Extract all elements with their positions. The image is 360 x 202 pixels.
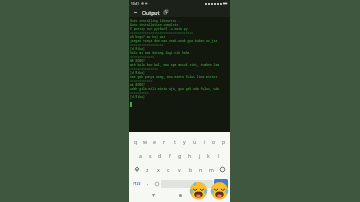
staticText: ============= (130, 55, 155, 59)
staticText: c (167, 166, 170, 173)
staticText: o (212, 138, 216, 145)
button[interactable]: y (180, 135, 189, 147)
staticText: r (163, 138, 166, 145)
button[interactable]: a (136, 149, 145, 161)
staticText: weh kulo bro bal, mau apa masuk sini, tu… (130, 63, 220, 67)
button[interactable]: Menu (132, 9, 138, 15)
staticText: udeh gila mili minta aja, gua gak ada fu… (130, 87, 220, 91)
staticText: jangan tanya dan mau anak-anak gua bukan… (130, 39, 218, 43)
button[interactable]: m (207, 163, 216, 175)
button[interactable]: p (219, 135, 228, 147)
staticText: l (218, 152, 220, 159)
button[interactable]: f (165, 149, 174, 161)
button[interactable]: , (143, 178, 152, 189)
staticText: j (199, 152, 201, 159)
button[interactable]: b (186, 163, 195, 175)
staticText: b (189, 166, 193, 173)
staticText: [d Riku] (130, 47, 145, 51)
button[interactable]: x (154, 163, 163, 175)
button[interactable]: q (131, 135, 140, 147)
staticText: u (193, 138, 197, 145)
staticText: f (169, 152, 171, 159)
button[interactable]: c (164, 163, 173, 175)
button[interactable]: n (196, 163, 205, 175)
button[interactable]: Shift (132, 163, 142, 175)
staticText: [d Riku] (130, 71, 145, 75)
staticText: w (143, 138, 148, 145)
staticText: s (149, 152, 152, 159)
staticText: WK BOBO? (130, 59, 145, 63)
button[interactable]: Emoji (152, 178, 161, 189)
staticText: ================== (130, 43, 164, 47)
button[interactable]: Home (176, 191, 184, 199)
button[interactable]: r (160, 135, 169, 147)
button[interactable]: j (195, 149, 204, 161)
button[interactable]: h (185, 149, 194, 161)
button[interactable]: w (141, 135, 150, 147)
staticText: Auto installing libraries... (130, 19, 182, 23)
staticText: a (139, 152, 142, 159)
staticText: h (188, 152, 192, 159)
staticText: ================================== (130, 31, 194, 35)
staticText: 10:41 (131, 2, 140, 6)
staticText: d (158, 152, 162, 159)
staticText: v (178, 166, 181, 173)
staticText: e (153, 138, 156, 145)
button[interactable]: o (209, 135, 218, 147)
button[interactable]: z (143, 163, 152, 175)
button[interactable]: i (200, 135, 209, 147)
staticText: ?123 (133, 181, 141, 186)
button[interactable]: e (150, 135, 159, 147)
button[interactable]: Back (149, 191, 157, 199)
staticText: t (174, 138, 176, 145)
staticText: y (183, 138, 186, 145)
staticText: n (199, 166, 203, 173)
staticText: halo mr ame datang lagi nih haha (130, 51, 190, 55)
button[interactable]: Enter (214, 179, 228, 189)
button[interactable]: k (204, 149, 213, 161)
staticText: $ poetry run python3 -u main.py (130, 27, 188, 31)
staticText: k (207, 152, 210, 159)
staticText: wk BOBO? (130, 83, 145, 87)
staticText: m (209, 166, 214, 173)
button[interactable]: s (146, 149, 155, 161)
button[interactable]: u (190, 135, 199, 147)
staticText: , (147, 180, 149, 187)
button[interactable]: g (175, 149, 184, 161)
staticText: p (222, 138, 226, 145)
staticText: [d Riku] (130, 95, 145, 99)
staticText: ============ (130, 79, 153, 83)
staticText: x (157, 166, 160, 173)
button[interactable]: l (214, 149, 223, 161)
button[interactable]: v (175, 163, 184, 175)
staticText: ========== (130, 91, 149, 95)
button[interactable]: d (155, 149, 164, 161)
staticText: g (178, 152, 182, 159)
button[interactable]: Backspace (217, 163, 227, 175)
button[interactable]: Space (161, 180, 213, 188)
staticText: z (146, 166, 149, 173)
button[interactable]: t (170, 135, 179, 147)
staticText: Output (142, 9, 160, 16)
staticText: ime gak punya uang, mau minta fulus lima… (130, 75, 218, 79)
staticText: Auto installation complete. (130, 23, 181, 27)
button[interactable]: ?123 (131, 178, 143, 189)
staticText: q (134, 138, 138, 145)
staticText: =============== (130, 67, 158, 71)
staticText: oh bego? mu koj war (130, 35, 166, 39)
staticText: i (204, 138, 206, 145)
button[interactable]: Copy output (163, 9, 169, 15)
